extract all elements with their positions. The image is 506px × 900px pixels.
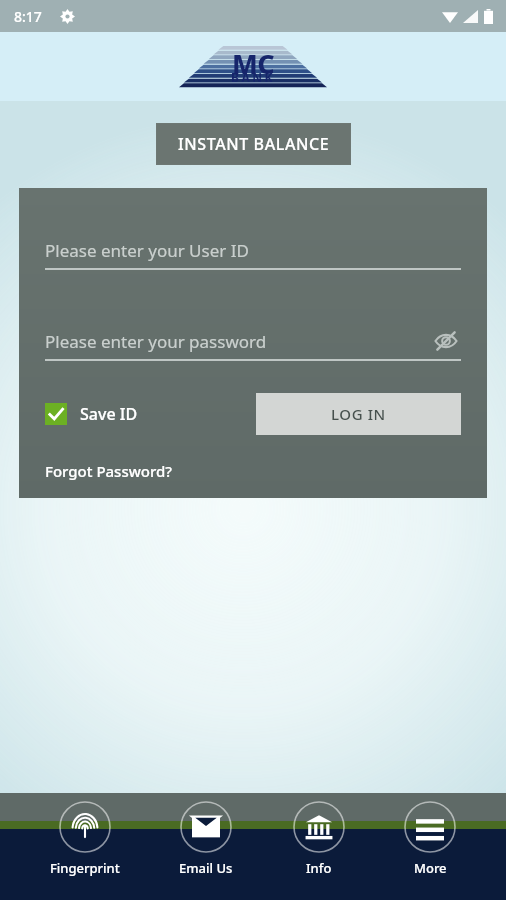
button[interactable]: Please enter your password <box>45 323 461 359</box>
button[interactable]: INSTANT BALANCE <box>156 123 351 165</box>
button[interactable]: Fingerprint <box>40 801 130 877</box>
staticText: More <box>414 859 447 877</box>
staticText: MC <box>232 45 275 82</box>
button[interactable]: More <box>394 801 466 877</box>
staticText: Info <box>306 859 332 877</box>
staticText: Email Us <box>179 859 233 877</box>
button[interactable]: Email Us <box>169 801 243 877</box>
other: Signal <box>463 10 478 23</box>
button[interactable]: Forgot Password? <box>45 461 173 481</box>
other: Email Us <box>180 801 232 853</box>
staticText: BANK <box>231 69 276 85</box>
staticText: INSTANT BALANCE <box>178 133 330 155</box>
other: Info <box>293 801 345 853</box>
staticText: Please enter your password <box>45 330 267 353</box>
other: Fingerprint <box>59 801 111 853</box>
button[interactable]: Please enter your User ID <box>45 232 461 268</box>
button[interactable]: Save ID <box>45 403 138 425</box>
button[interactable]: LOG IN <box>256 393 461 435</box>
other: More <box>404 801 456 853</box>
button[interactable]: Info <box>283 801 355 877</box>
staticText: 8:17 <box>14 7 42 26</box>
staticText: Please enter your User ID <box>45 239 249 262</box>
other: Battery <box>484 9 493 24</box>
button[interactable]: Show password <box>431 326 461 356</box>
other: Settings <box>60 9 75 24</box>
staticText: Save ID <box>80 403 138 425</box>
other: Wifi <box>442 10 458 23</box>
staticText: LOG IN <box>331 404 386 424</box>
staticText: Forgot Password? <box>45 461 173 481</box>
staticText: Fingerprint <box>50 859 120 877</box>
